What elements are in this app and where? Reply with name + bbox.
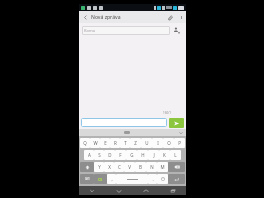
button[interactable]: L [170, 150, 181, 160]
staticText: Nová zpráva [91, 14, 121, 21]
staticText: S [98, 152, 101, 158]
button[interactable]: O [163, 138, 174, 148]
staticText: U [145, 140, 149, 146]
button[interactable] [81, 118, 167, 127]
staticText: 160/1 [163, 111, 171, 115]
button[interactable]: G [126, 150, 137, 160]
staticText: F [119, 152, 122, 158]
staticText: D [108, 152, 112, 158]
button[interactable]: X [104, 162, 114, 172]
button[interactable]: Recent apps [159, 186, 186, 195]
button[interactable]: , [107, 174, 116, 184]
button[interactable]: Keyboard handle [124, 131, 130, 134]
button[interactable]: Add contact [170, 23, 183, 38]
button[interactable]: F [115, 150, 126, 160]
button[interactable]: Shift [80, 162, 94, 172]
button[interactable]: D [104, 150, 115, 160]
button[interactable]: Y [94, 162, 104, 172]
button[interactable]: R [110, 138, 120, 148]
button[interactable]: Home [132, 186, 159, 195]
button[interactable]: P [174, 138, 185, 148]
staticText: !#1 [85, 177, 90, 181]
button[interactable]: I [152, 138, 163, 148]
staticText: CS [98, 177, 103, 182]
button[interactable]: Hide keyboard [176, 129, 186, 136]
staticText: L [174, 152, 177, 158]
staticText: R [114, 140, 117, 146]
button[interactable]: M [157, 162, 168, 172]
staticText: Komu [84, 28, 96, 33]
button[interactable]: Menu [105, 186, 132, 195]
button[interactable]: Send [169, 118, 184, 128]
button[interactable]: T [120, 138, 130, 148]
button[interactable]: U [141, 138, 152, 148]
button[interactable]: Z [130, 138, 141, 148]
button[interactable]: Q [80, 138, 90, 148]
button[interactable]: Back [79, 186, 105, 195]
staticText: J [153, 152, 155, 158]
staticText: . [152, 176, 154, 182]
button[interactable]: Emoji [157, 174, 168, 184]
button[interactable]: W [90, 138, 100, 148]
staticText: E [104, 140, 107, 146]
button[interactable]: . [148, 174, 157, 184]
button[interactable]: Symbols [80, 174, 94, 184]
button[interactable]: N [146, 162, 157, 172]
staticText: B [139, 164, 142, 170]
button[interactable]: S [94, 150, 104, 160]
button[interactable]: B [135, 162, 146, 172]
staticText: V [128, 164, 131, 170]
staticText: K [163, 152, 166, 158]
staticText: M [160, 164, 165, 170]
staticText: P [178, 140, 181, 146]
staticText: W [93, 140, 98, 146]
button[interactable]: More options [176, 11, 186, 23]
button[interactable]: V [124, 162, 135, 172]
button[interactable]: Komu [82, 26, 170, 35]
staticText: G [130, 152, 134, 158]
staticText: X [108, 164, 111, 170]
staticText: H [141, 152, 145, 158]
staticText: O [167, 140, 171, 146]
staticText: N [150, 164, 154, 170]
staticText: Q [83, 140, 87, 146]
button[interactable]: K [159, 150, 170, 160]
staticText: I [157, 140, 159, 146]
staticText: C [118, 164, 121, 170]
button[interactable]: Space [116, 174, 148, 184]
button[interactable]: Enter [168, 174, 185, 184]
button[interactable]: J [148, 150, 159, 160]
button[interactable]: Attach [163, 11, 176, 23]
staticText: , [111, 176, 113, 182]
button[interactable]: C [114, 162, 124, 172]
button[interactable]: Language Czech [94, 174, 107, 184]
button[interactable]: A [84, 150, 94, 160]
button[interactable]: Backspace [168, 162, 185, 172]
staticText: Z [134, 140, 137, 146]
staticText: T [124, 140, 127, 146]
button[interactable]: Back [79, 11, 91, 23]
staticText: Y [98, 164, 101, 170]
staticText: A [88, 152, 91, 158]
button[interactable]: E [100, 138, 110, 148]
button[interactable]: H [137, 150, 148, 160]
